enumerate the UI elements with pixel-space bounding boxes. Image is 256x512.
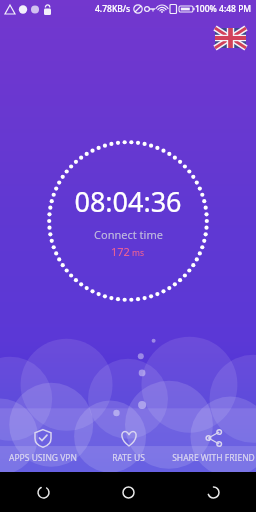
button[interactable]: Connection timer <box>47 140 209 302</box>
button[interactable]: Home <box>86 472 171 512</box>
staticText: APPS USING VPN <box>9 452 77 464</box>
staticText: RATE US <box>112 452 145 464</box>
staticText: Connect time <box>94 227 163 242</box>
button[interactable]: APPS USING VPN <box>0 420 86 472</box>
staticText: 100% 4:48 PM <box>195 3 252 15</box>
button[interactable]: SHARE WITH FRIEND <box>171 420 256 472</box>
button[interactable]: Select country <box>215 28 246 48</box>
staticText: ms <box>132 247 145 259</box>
button[interactable]: Back <box>171 472 256 512</box>
staticText: 4.78KB/s <box>95 3 131 15</box>
staticText: 172 <box>111 244 130 259</box>
button[interactable]: RATE US <box>86 420 171 472</box>
button[interactable]: Recents <box>0 472 86 512</box>
staticText: SHARE WITH FRIEND <box>172 452 255 464</box>
staticText: 08:04:36 <box>74 183 182 220</box>
